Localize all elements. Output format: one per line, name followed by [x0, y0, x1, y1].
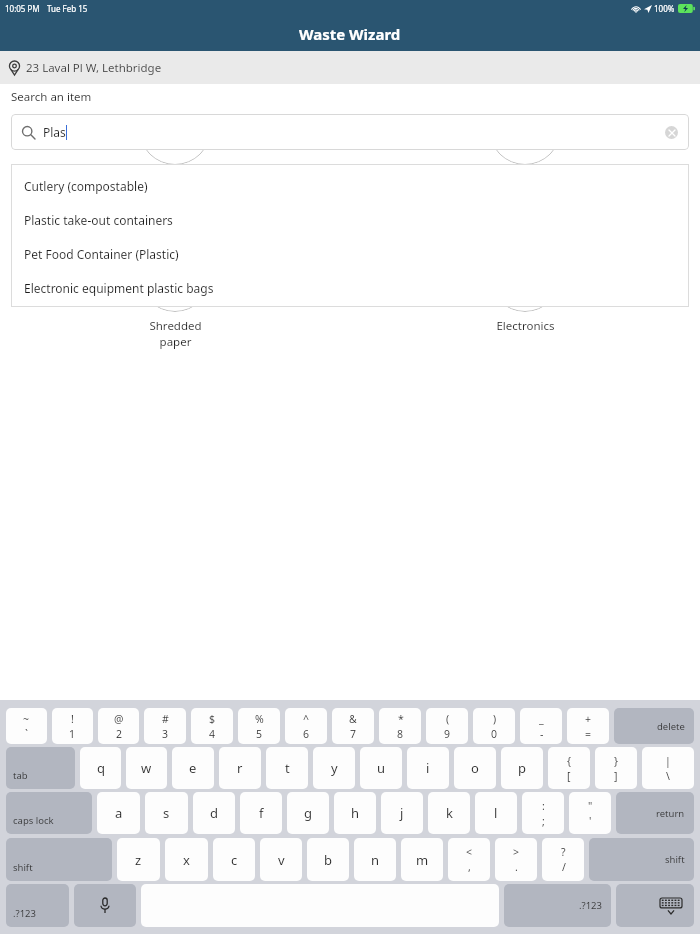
button[interactable]: #: [144, 708, 186, 744]
staticText: c: [231, 851, 238, 869]
button[interactable]: shift: [589, 838, 694, 881]
staticText: 5: [256, 727, 263, 741]
button[interactable]: ?: [542, 838, 584, 881]
button[interactable]: +: [567, 708, 609, 744]
button[interactable]: Clear search: [665, 126, 678, 139]
button[interactable]: ": [569, 792, 611, 834]
button[interactable]: e: [172, 747, 214, 789]
button[interactable]: Shredded paper: [100, 236, 250, 353]
button[interactable]: p: [501, 747, 543, 789]
button[interactable]: Glass bottles & j...: [450, 89, 600, 206]
button[interactable]: *: [379, 708, 421, 744]
staticText: Tue Feb 15: [47, 3, 88, 14]
staticText: =: [585, 727, 592, 741]
staticText: ): [493, 712, 497, 726]
button[interactable]: v: [260, 838, 302, 881]
button[interactable]: b: [307, 838, 349, 881]
staticText: n: [371, 851, 380, 869]
button[interactable]: _: [520, 708, 562, 744]
button[interactable]: $: [191, 708, 233, 744]
button[interactable]: g: [287, 792, 329, 834]
button[interactable]: n: [354, 838, 396, 881]
button[interactable]: {: [548, 747, 590, 789]
button[interactable]: :: [522, 792, 564, 834]
button[interactable]: f: [240, 792, 282, 834]
button[interactable]: o: [454, 747, 496, 789]
staticText: Cutlery (compostable): [24, 178, 148, 194]
button[interactable]: .?123: [6, 884, 69, 927]
button[interactable]: z: [117, 838, 160, 881]
button[interactable]: u: [360, 747, 402, 789]
button[interactable]: &: [332, 708, 374, 744]
staticText: ,: [468, 860, 471, 874]
staticText: Plastic take-out containers: [24, 212, 173, 228]
staticText: _: [539, 712, 544, 726]
staticText: 3: [162, 727, 169, 741]
button[interactable]: 23 Laval Pl W, Lethbridge: [0, 51, 700, 84]
button[interactable]: k: [428, 792, 470, 834]
staticText: g: [304, 804, 312, 822]
button[interactable]: a: [97, 792, 140, 834]
button[interactable]: (: [426, 708, 468, 744]
button[interactable]: m: [401, 838, 443, 881]
button[interactable]: l: [475, 792, 517, 834]
button[interactable]: return: [616, 792, 694, 834]
staticText: 23 Laval Pl W, Lethbridge: [26, 60, 162, 76]
staticText: w: [141, 759, 152, 777]
button[interactable]: Electronic equipment plastic bags: [11, 271, 689, 305]
button[interactable]: Plas: [11, 114, 689, 150]
button[interactable]: delete: [614, 708, 694, 744]
button[interactable]: %: [238, 708, 280, 744]
button[interactable]: Pet Food Container (Plastic): [11, 237, 689, 271]
staticText: j: [400, 804, 404, 822]
button[interactable]: x: [165, 838, 208, 881]
button[interactable]: Plastic take-out containers: [11, 203, 689, 237]
staticText: return: [656, 807, 685, 820]
button[interactable]: ): [473, 708, 515, 744]
button[interactable]: |: [642, 747, 694, 789]
button[interactable]: Hide keyboard: [616, 884, 694, 927]
staticText: b: [324, 851, 332, 869]
button[interactable]: caps lock: [6, 792, 92, 834]
button[interactable]: >: [495, 838, 537, 881]
staticText: 7: [350, 727, 357, 741]
button[interactable]: @: [98, 708, 139, 744]
button[interactable]: s: [145, 792, 188, 834]
staticText: v: [278, 851, 285, 869]
button[interactable]: Dictate: [74, 884, 136, 927]
staticText: 100%: [654, 3, 675, 14]
button[interactable]: w: [126, 747, 167, 789]
staticText: +: [585, 712, 592, 726]
button[interactable]: ~: [6, 708, 47, 744]
button[interactable]: Styrofoam: [100, 89, 250, 191]
button[interactable]: !: [52, 708, 93, 744]
button[interactable]: shift: [6, 838, 112, 881]
staticText: `: [25, 727, 28, 741]
staticText: Electronics: [496, 318, 555, 334]
button[interactable]: .?123: [504, 884, 611, 927]
button[interactable]: t: [266, 747, 308, 789]
button[interactable]: c: [213, 838, 255, 881]
staticText: [: [567, 769, 571, 783]
button[interactable]: ^: [285, 708, 327, 744]
button[interactable]: h: [334, 792, 376, 834]
button[interactable]: q: [80, 747, 121, 789]
button[interactable]: y: [313, 747, 355, 789]
staticText: shift: [665, 853, 685, 866]
staticText: p: [518, 759, 526, 777]
button[interactable]: d: [193, 792, 235, 834]
button[interactable]: Cutlery (compostable): [11, 169, 689, 203]
staticText: ;: [542, 814, 545, 828]
staticText: 6: [303, 727, 310, 741]
button[interactable]: j: [381, 792, 423, 834]
staticText: a: [115, 804, 123, 822]
button[interactable]: }: [595, 747, 637, 789]
button[interactable]: i: [407, 747, 449, 789]
button[interactable]: tab: [6, 747, 75, 789]
staticText: ?: [561, 845, 566, 859]
button[interactable]: r: [219, 747, 261, 789]
button[interactable]: <: [448, 838, 490, 881]
button[interactable]: Electronics: [450, 236, 600, 338]
